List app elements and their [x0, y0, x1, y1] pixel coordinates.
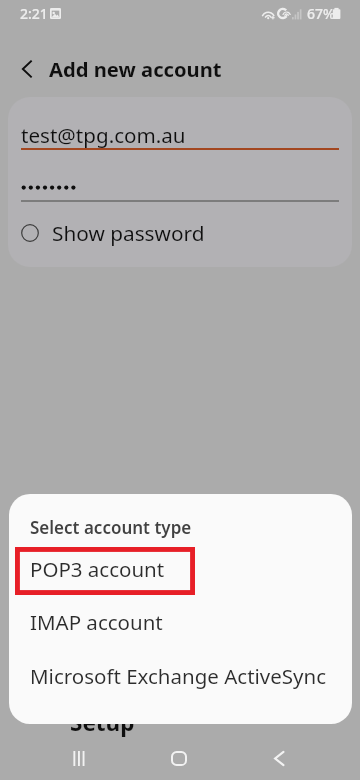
staticText: Setup [70, 707, 135, 738]
staticText: Select account type [30, 516, 192, 539]
button[interactable]: IMAP account [9, 600, 352, 647]
button[interactable]: POP3 account [9, 547, 352, 594]
button[interactable]: Navigate up [7, 49, 47, 89]
button[interactable]: Recent apps [58, 736, 100, 780]
button[interactable]: Back [258, 736, 300, 780]
staticText: IMAP account [30, 608, 163, 636]
staticText: Add new account [49, 55, 222, 83]
staticText: Microsoft Exchange ActiveSync [30, 662, 327, 690]
button[interactable]: Show password [8, 213, 352, 253]
staticText: Show password [52, 219, 205, 247]
button[interactable]: Home [158, 736, 200, 780]
staticText: POP3 account [30, 555, 165, 583]
staticText: 67% [307, 4, 335, 23]
button[interactable]: Microsoft Exchange ActiveSync [9, 654, 352, 701]
staticText: test@tpg.com.au [21, 121, 186, 149]
staticText: 2:21 [20, 4, 48, 23]
